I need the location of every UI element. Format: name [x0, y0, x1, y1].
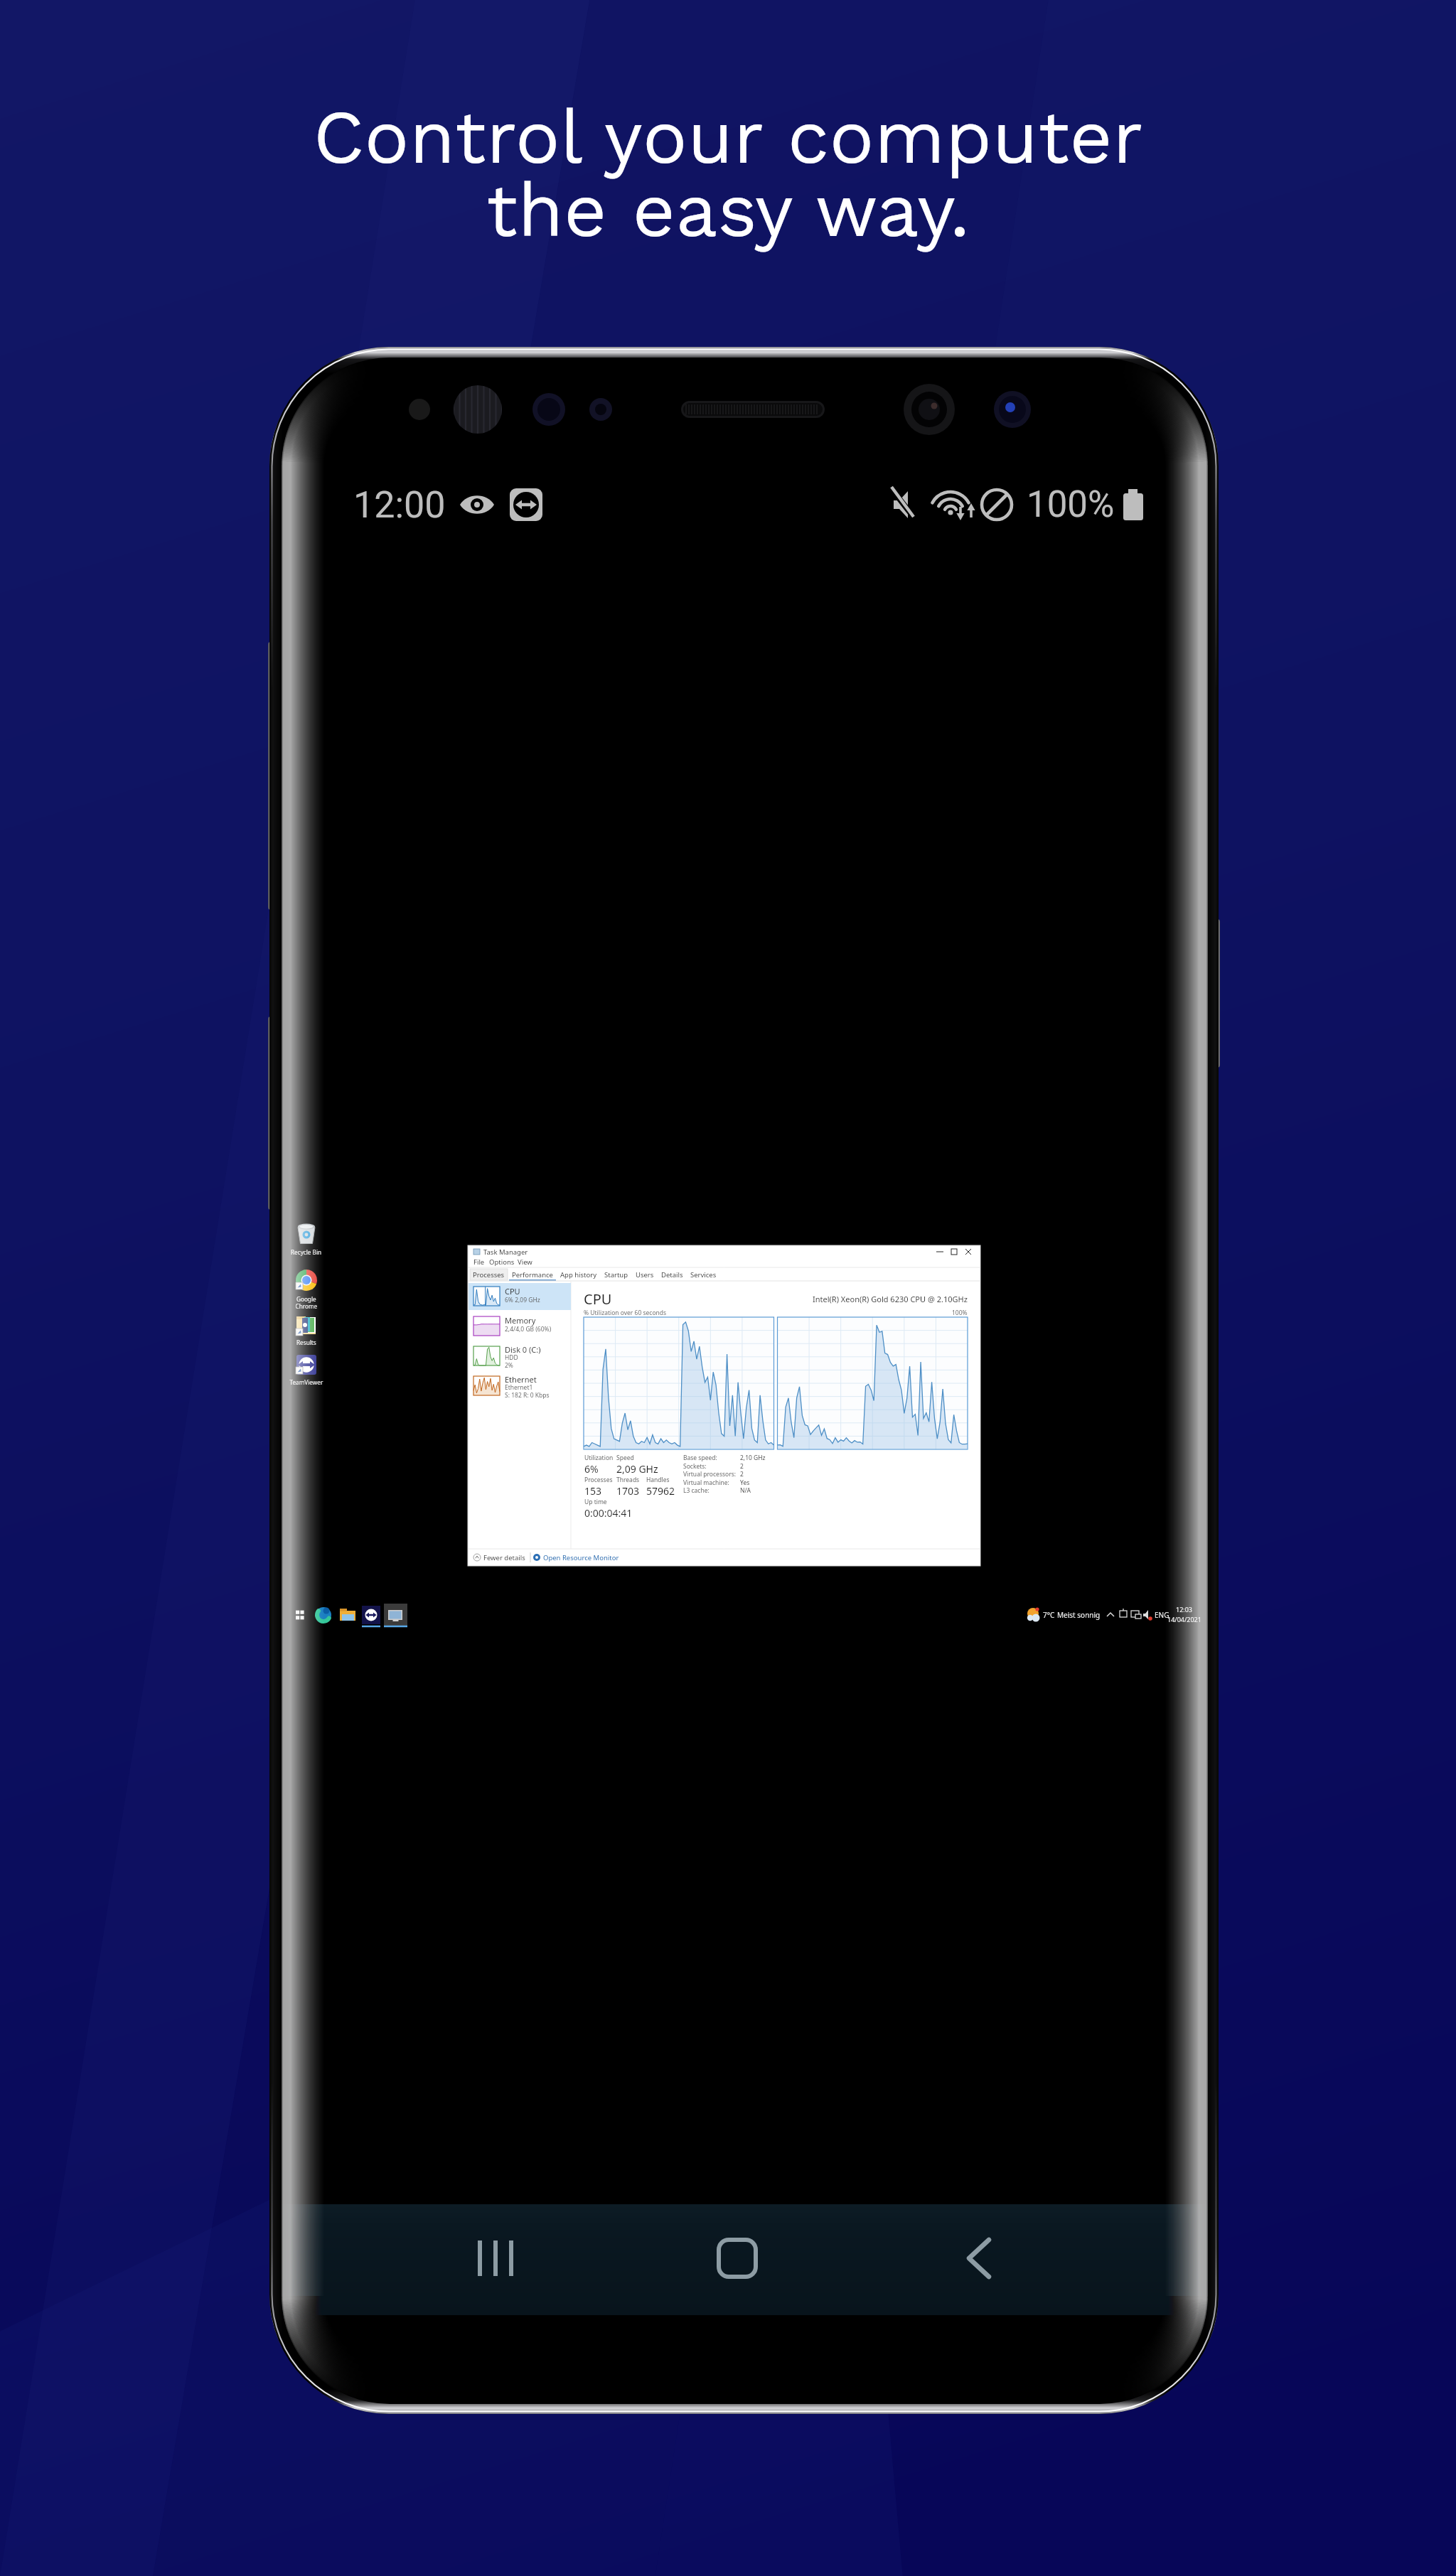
- button[interactable]: Close: [963, 1247, 980, 1261]
- button[interactable]: Google Chrome: [291, 1268, 323, 1312]
- button[interactable]: Maximize: [946, 1247, 963, 1261]
- button[interactable]: Home: [719, 2238, 757, 2280]
- button[interactable]: TeamViewer: [291, 1353, 323, 1389]
- button[interactable]: Start: [291, 1602, 309, 1628]
- button[interactable]: TeamViewer running: [508, 485, 545, 525]
- button[interactable]: CPU: [471, 1294, 577, 1325]
- button[interactable]: Task Manager: [383, 1602, 407, 1628]
- button[interactable]: TeamViewer: [361, 1602, 381, 1628]
- staticText: Control your computer the easy way.: [313, 93, 1143, 254]
- button[interactable]: Minimize: [928, 1247, 945, 1261]
- button[interactable]: Recent apps: [480, 2238, 531, 2280]
- button[interactable]: Performance tab: [471, 1278, 537, 1291]
- button[interactable]: Microsoft Edge: [314, 1602, 333, 1628]
- button[interactable]: Back: [964, 2238, 1000, 2280]
- button[interactable]: Results folder: [291, 1315, 323, 1349]
- button[interactable]: File Explorer: [338, 1602, 357, 1628]
- button[interactable]: Blue light filter: [459, 485, 497, 525]
- button[interactable]: Recycle Bin: [291, 1223, 323, 1258]
